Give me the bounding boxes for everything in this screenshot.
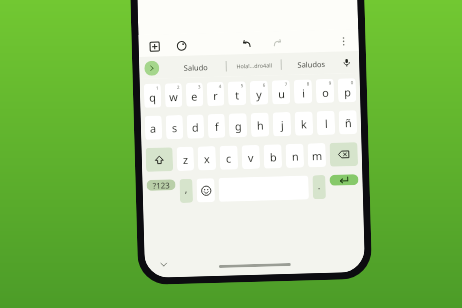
- staticText: l: [325, 116, 328, 131]
- button[interactable]: s: [166, 115, 183, 139]
- staticText: k: [301, 116, 307, 132]
- staticText: ,: [184, 182, 188, 196]
- button[interactable]: m: [307, 143, 326, 167]
- button[interactable]: ñ: [338, 110, 357, 134]
- staticText: e: [191, 88, 198, 104]
- button[interactable]: More options: [334, 32, 352, 50]
- staticText: ?123: [152, 179, 171, 191]
- staticText: g: [235, 118, 242, 133]
- staticText: z: [183, 152, 189, 167]
- staticText: i: [302, 85, 305, 101]
- button[interactable]: w: [165, 83, 182, 107]
- staticText: 4: [219, 83, 222, 89]
- staticText: w: [169, 89, 178, 104]
- button[interactable]: n: [285, 143, 304, 168]
- staticText: c: [226, 150, 232, 166]
- staticText: s: [172, 120, 178, 135]
- staticText: f: [215, 119, 219, 134]
- button[interactable]: t: [228, 81, 246, 106]
- button[interactable]: Saludos: [283, 55, 339, 72]
- staticText: j: [281, 117, 284, 132]
- staticText: ñ: [345, 115, 352, 130]
- button[interactable]: v: [241, 145, 260, 169]
- staticText: 8: [307, 80, 310, 86]
- button[interactable]: j: [273, 112, 291, 136]
- staticText: 7: [285, 81, 288, 87]
- staticText: n: [292, 149, 299, 164]
- staticText: y: [256, 87, 262, 102]
- button[interactable]: ,: [179, 179, 193, 203]
- staticText: m: [312, 148, 323, 163]
- staticText: a: [150, 121, 157, 136]
- button[interactable]: Space: [218, 175, 309, 202]
- button[interactable]: e: [186, 82, 203, 107]
- staticText: h: [257, 118, 264, 133]
- staticText: 0: [351, 79, 354, 85]
- staticText: 1: [156, 85, 159, 91]
- button[interactable]: Expand suggestions: [144, 60, 159, 76]
- button[interactable]: Hola!...dro4all: [226, 57, 281, 74]
- staticText: Saludos: [297, 59, 325, 70]
- button[interactable]: Undo: [237, 35, 255, 52]
- staticText: u: [278, 86, 285, 101]
- button[interactable]: Enter: [329, 174, 359, 186]
- button[interactable]: f: [208, 114, 225, 138]
- button[interactable]: .: [312, 175, 326, 199]
- button[interactable]: z: [176, 147, 194, 171]
- staticText: b: [270, 149, 277, 164]
- button[interactable]: Shift: [145, 147, 173, 172]
- button[interactable]: b: [263, 144, 282, 169]
- staticText: Saludo: [183, 62, 208, 73]
- staticText: 6: [263, 82, 266, 88]
- button[interactable]: i: [294, 79, 312, 104]
- button[interactable]: h: [251, 112, 269, 137]
- button[interactable]: r: [207, 82, 224, 106]
- button[interactable]: Voice input: [339, 55, 354, 70]
- button[interactable]: Backspace: [329, 142, 358, 167]
- staticText: v: [248, 150, 254, 165]
- staticText: t: [235, 87, 239, 102]
- staticText: q: [149, 90, 156, 105]
- button[interactable]: y: [250, 80, 268, 105]
- staticText: 2: [177, 84, 180, 90]
- button[interactable]: Add: [145, 37, 163, 55]
- button[interactable]: p: [338, 78, 356, 103]
- staticText: p: [344, 84, 351, 99]
- button[interactable]: q: [144, 83, 161, 108]
- staticText: x: [204, 151, 210, 166]
- button[interactable]: Redo: [268, 34, 286, 51]
- button[interactable]: Hide keyboard: [157, 257, 171, 272]
- staticText: o: [322, 85, 329, 100]
- button[interactable]: Emoji: [196, 178, 215, 202]
- staticText: 5: [241, 82, 244, 88]
- staticText: 3: [198, 83, 201, 89]
- button[interactable]: ?123: [146, 179, 176, 191]
- button[interactable]: c: [219, 145, 238, 170]
- staticText: Hola!...dro4all: [236, 61, 272, 69]
- button[interactable]: l: [317, 111, 335, 135]
- button[interactable]: Theme: [172, 37, 190, 54]
- staticText: .: [317, 178, 321, 192]
- button[interactable]: k: [295, 111, 313, 136]
- button[interactable]: o: [316, 79, 334, 103]
- button[interactable]: u: [272, 80, 290, 104]
- button[interactable]: Saludo: [167, 59, 224, 75]
- staticText: r: [213, 88, 218, 103]
- button[interactable]: x: [197, 146, 216, 170]
- staticText: d: [192, 119, 199, 135]
- button[interactable]: d: [187, 114, 204, 139]
- button[interactable]: g: [229, 113, 247, 138]
- staticText: 9: [329, 80, 332, 86]
- button[interactable]: a: [145, 115, 162, 140]
